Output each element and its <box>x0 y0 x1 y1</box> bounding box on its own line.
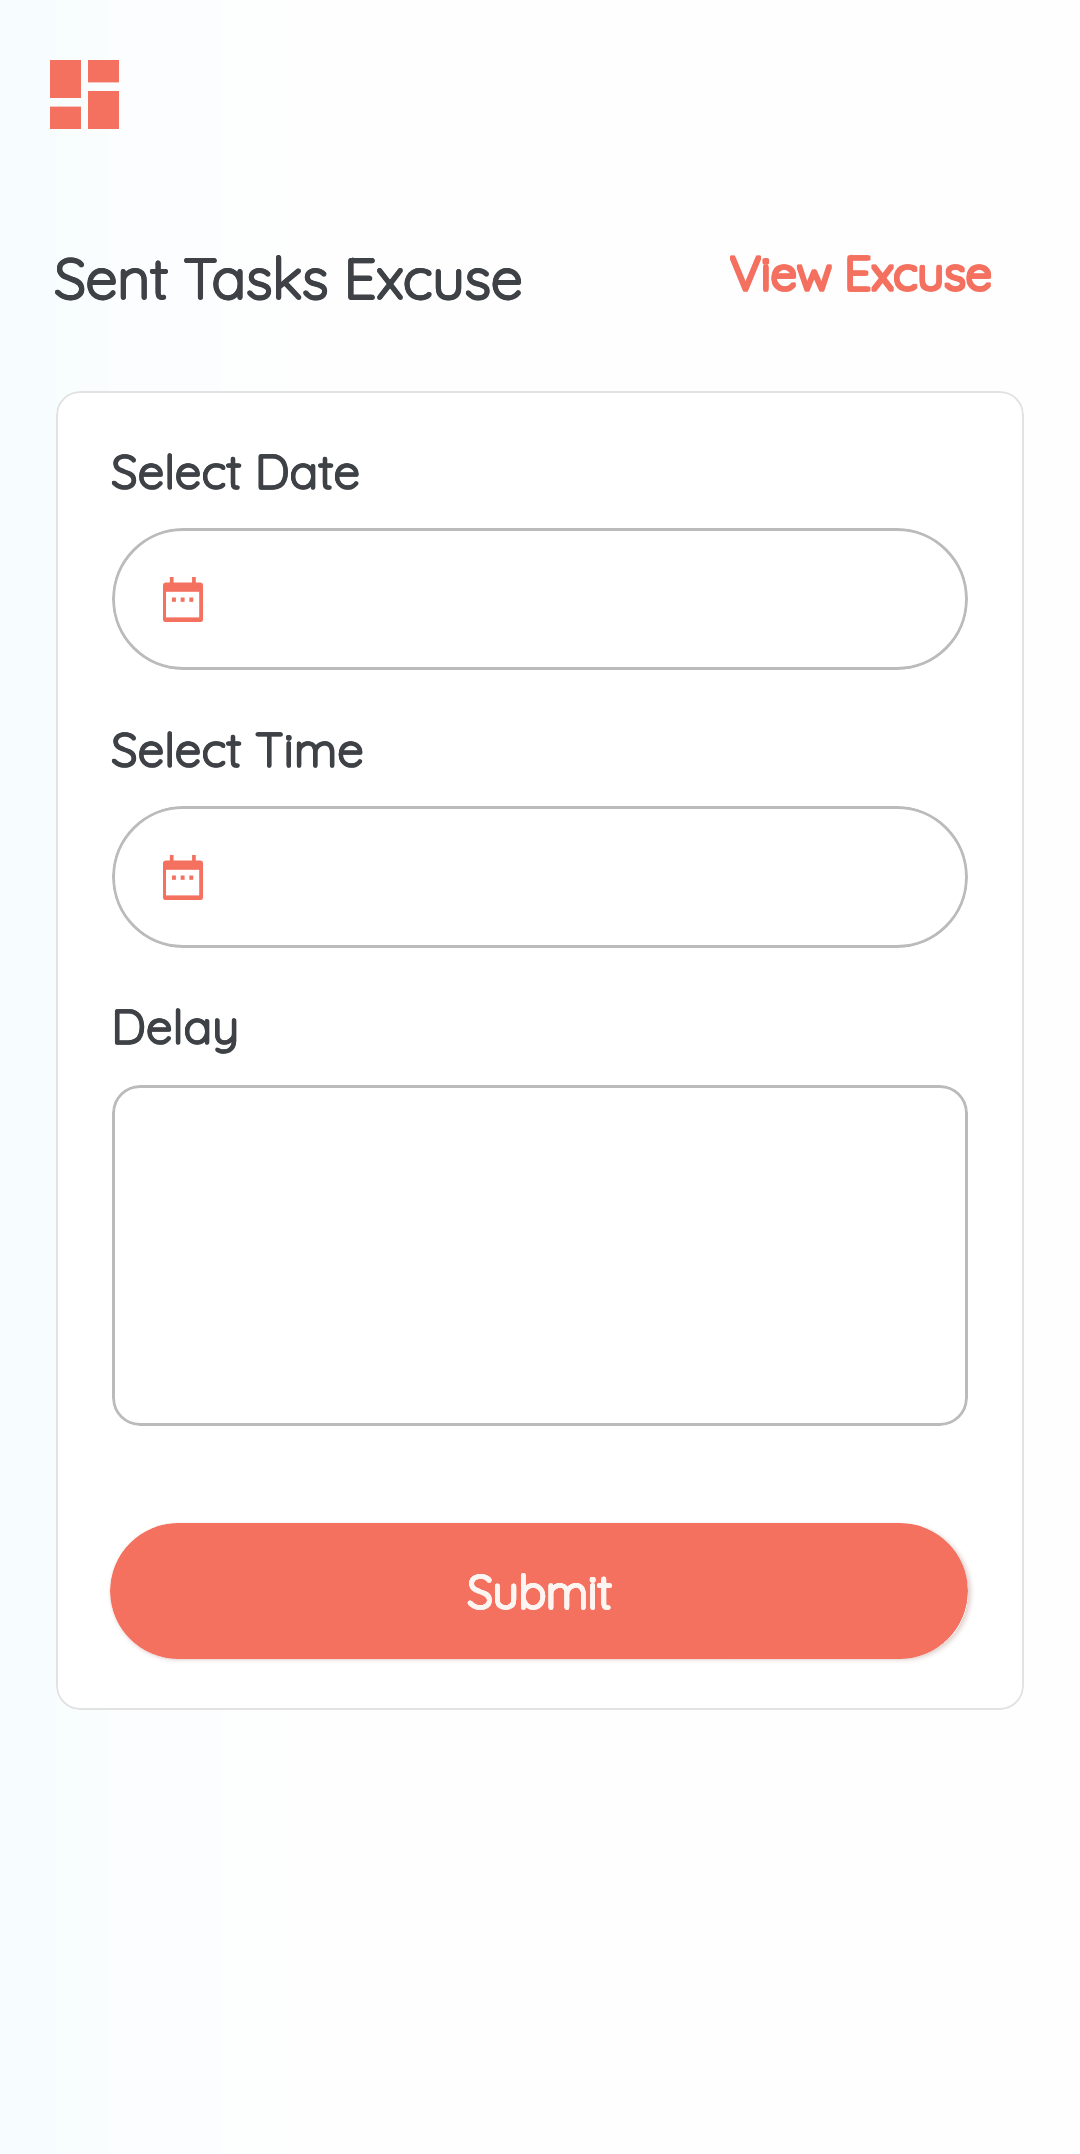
staticText: Delay <box>111 997 240 1056</box>
button[interactable]: View Excuse <box>729 242 991 301</box>
staticText: Delay <box>112 997 241 1056</box>
button[interactable]: Submit <box>110 1523 968 1659</box>
staticText: Sent Tasks Excuse <box>54 242 523 313</box>
staticText: Select Date <box>111 442 360 501</box>
staticText: Delay <box>112 996 241 1055</box>
staticText: Select Date <box>111 441 360 500</box>
staticText: Select Time <box>111 720 364 779</box>
staticText: View Excuse <box>729 244 991 303</box>
staticText: View Excuse <box>730 243 992 302</box>
staticText: Select Date <box>112 442 361 501</box>
button[interactable]: Delay reason <box>112 1085 968 1426</box>
staticText: View Excuse <box>731 244 993 303</box>
staticText: Select Date <box>111 441 360 500</box>
staticText: View Excuse <box>729 242 991 301</box>
staticText: View Excuse <box>731 242 993 301</box>
staticText: Sent Tasks Excuse <box>55 241 524 312</box>
button[interactable]: Dashboard <box>50 60 119 129</box>
staticText: Select Time <box>111 719 364 778</box>
staticText: Sent Tasks Excuse <box>54 241 523 312</box>
staticText: Select Time <box>112 719 365 778</box>
staticText: Submit <box>467 1562 612 1620</box>
staticText: Submit <box>467 1562 612 1620</box>
button[interactable]: Sent Tasks Excuse <box>54 241 523 312</box>
staticText: Delay <box>111 996 240 1055</box>
staticText: Delay <box>111 996 240 1055</box>
staticText: Select Time <box>112 720 365 779</box>
staticText: Select Date <box>112 441 361 500</box>
staticText: Submit <box>468 1563 613 1621</box>
staticText: Sent Tasks Excuse <box>55 242 524 313</box>
staticText: Sent Tasks Excuse <box>54 241 523 312</box>
staticText: Select Time <box>111 719 364 778</box>
staticText: Submit <box>468 1562 613 1620</box>
button[interactable]: Pick a time <box>112 806 968 948</box>
staticText: Submit <box>467 1563 612 1621</box>
button[interactable]: Pick a date <box>112 528 968 670</box>
